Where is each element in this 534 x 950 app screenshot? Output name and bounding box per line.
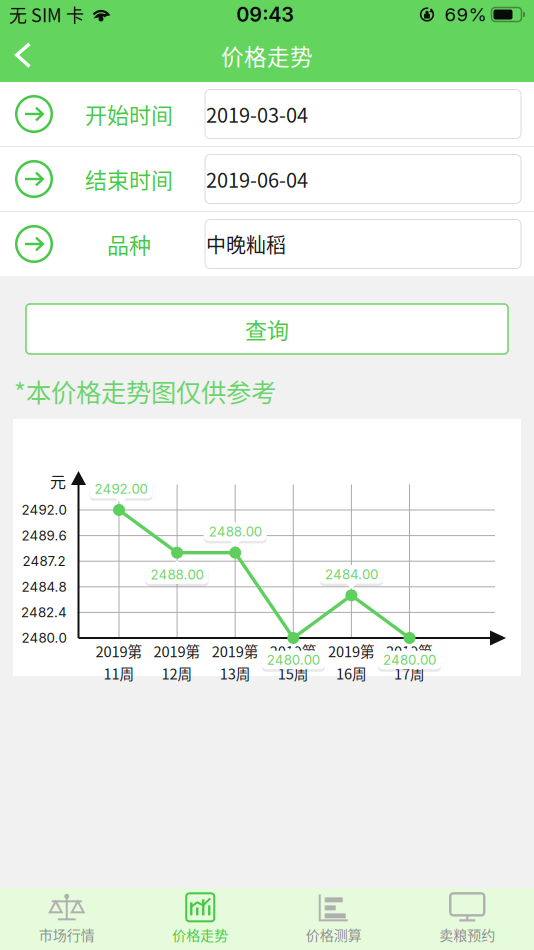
staticText: 17周 [394, 662, 425, 684]
staticText: 2484.00 [325, 566, 378, 582]
button[interactable]: 价格走势 [133, 888, 267, 950]
staticText: 2484.8 [21, 579, 66, 595]
staticText: 查询 [245, 313, 289, 345]
staticText: 2019第 [328, 640, 375, 661]
button[interactable]: Back [0, 32, 46, 78]
staticText: 开始时间 [85, 98, 173, 130]
button[interactable]: 结束时间 [0, 147, 534, 211]
staticText: 2019-06-04 [206, 164, 308, 193]
staticText: 品种 [107, 228, 151, 260]
staticText: 13周 [220, 662, 251, 684]
staticText: 2480.00 [267, 652, 320, 668]
staticText: 价格走势 [221, 39, 313, 72]
button[interactable]: 卖粮预约 [400, 888, 534, 950]
staticText: *本价格走势图仅供参考 [14, 373, 276, 409]
staticText: 2480.00 [383, 652, 436, 668]
button[interactable]: 市场行情 [0, 888, 133, 950]
staticText: 2487.2 [22, 553, 65, 569]
staticText: 市场行情 [39, 924, 95, 945]
staticText: 价格测算 [306, 924, 362, 945]
staticText: 无 SIM 卡 [9, 1, 84, 28]
button[interactable]: 品种 [0, 212, 534, 276]
staticText: 2019第 [154, 640, 201, 661]
staticText: 2019第 [212, 640, 259, 661]
staticText: 15周 [278, 662, 309, 684]
staticText: 2492.0 [21, 502, 66, 518]
staticText: 16周 [336, 662, 367, 684]
staticText: 元 [50, 469, 66, 493]
staticText: 69% [444, 3, 486, 26]
staticText: 中晚籼稻 [206, 229, 286, 258]
staticText: 2492.00 [94, 481, 147, 497]
staticText: 2019第 [270, 640, 317, 661]
staticText: 2019第 [386, 640, 433, 661]
staticText: 12周 [162, 662, 193, 684]
staticText: 结束时间 [85, 163, 173, 195]
staticText: 2019-03-04 [206, 99, 308, 128]
staticText: 2489.6 [21, 527, 66, 544]
staticText: 09:43 [236, 2, 294, 27]
staticText: 2480.0 [21, 630, 66, 646]
staticText: 2019第 [95, 640, 142, 661]
staticText: 卖粮预约 [439, 924, 495, 945]
button[interactable]: 价格测算 [267, 888, 400, 950]
button[interactable]: 查询 [26, 304, 508, 354]
staticText: 价格走势 [172, 924, 228, 945]
staticText: 2488.00 [151, 567, 204, 583]
button[interactable]: 开始时间 [0, 82, 534, 146]
staticText: 2482.4 [21, 604, 67, 620]
staticText: 11周 [103, 662, 134, 684]
staticText: 2488.00 [209, 524, 262, 540]
